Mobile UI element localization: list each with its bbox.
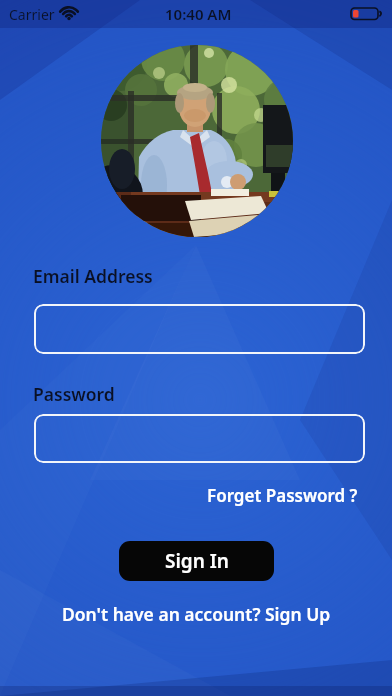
button[interactable]: Don't have an account? Sign Up xyxy=(62,602,331,626)
button[interactable]: Forget Password ? xyxy=(207,484,358,507)
staticText: Password xyxy=(33,382,115,406)
button[interactable]: Sign In xyxy=(119,541,274,581)
staticText: Email Address xyxy=(33,264,153,288)
staticText: 10:40 AM xyxy=(165,4,232,24)
staticText: Carrier xyxy=(9,5,55,24)
staticText: Forget Password ? xyxy=(207,484,358,507)
button[interactable] xyxy=(34,304,365,354)
button[interactable] xyxy=(34,414,365,463)
staticText: Don't have an account? Sign Up xyxy=(62,602,331,626)
staticText: Sign In xyxy=(165,548,229,574)
